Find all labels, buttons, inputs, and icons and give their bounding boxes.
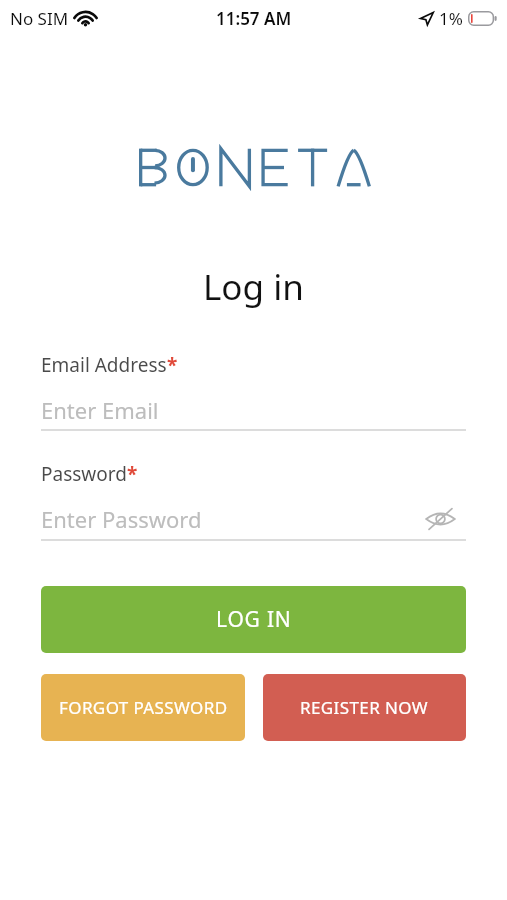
staticText: No SIM xyxy=(10,7,69,30)
button[interactable]: Enter Email xyxy=(41,391,466,429)
staticText: Enter Password xyxy=(41,504,202,534)
staticText: REGISTER NOW xyxy=(300,696,429,719)
staticText: * xyxy=(127,461,138,487)
button[interactable]: Enter Password xyxy=(41,500,466,538)
staticText: Password xyxy=(41,461,127,487)
other: Boneta logo xyxy=(139,147,370,188)
staticText: Enter Email xyxy=(41,395,159,425)
button[interactable]: LOG IN xyxy=(41,586,466,653)
button[interactable]: REGISTER NOW xyxy=(263,674,466,741)
button[interactable]: FORGOT PASSWORD xyxy=(41,674,245,741)
staticText: FORGOT PASSWORD xyxy=(59,696,228,719)
staticText: 11:57 AM xyxy=(216,7,292,30)
staticText: * xyxy=(167,352,178,378)
staticText: Log in xyxy=(203,263,304,311)
staticText: Email Address xyxy=(41,352,167,378)
button[interactable]: Show password xyxy=(417,497,463,541)
staticText: 1% xyxy=(439,7,463,30)
staticText: LOG IN xyxy=(216,605,292,634)
